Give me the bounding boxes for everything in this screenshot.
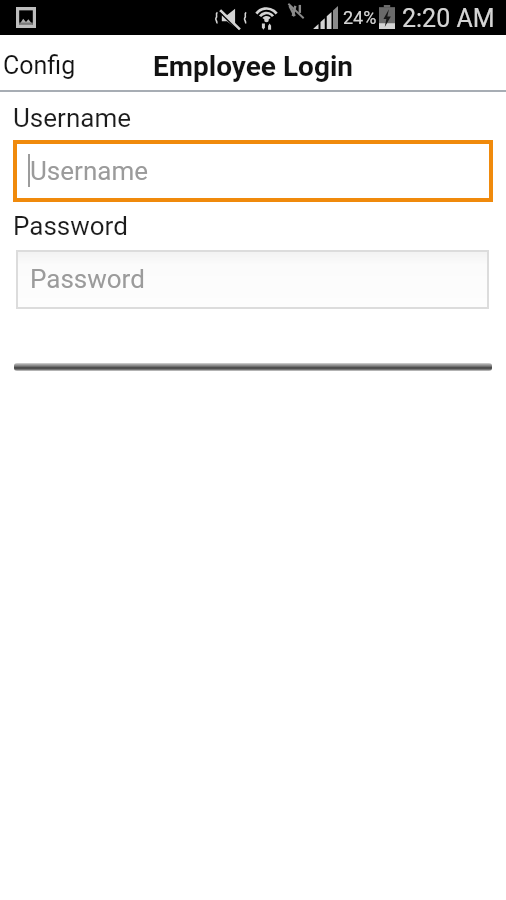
button[interactable]: Password input field bbox=[16, 250, 489, 309]
staticText: Employee Login bbox=[153, 50, 354, 83]
staticText: Password bbox=[30, 264, 145, 294]
staticText: Password bbox=[13, 211, 128, 241]
button[interactable]: Username input field bbox=[13, 140, 493, 202]
staticText: 24% bbox=[343, 7, 377, 28]
staticText: 2:20 AM bbox=[402, 4, 495, 33]
staticText: Username bbox=[30, 156, 148, 186]
button[interactable]: Config bbox=[0, 35, 140, 89]
staticText: Config bbox=[3, 51, 76, 80]
staticText: Username bbox=[13, 103, 131, 133]
